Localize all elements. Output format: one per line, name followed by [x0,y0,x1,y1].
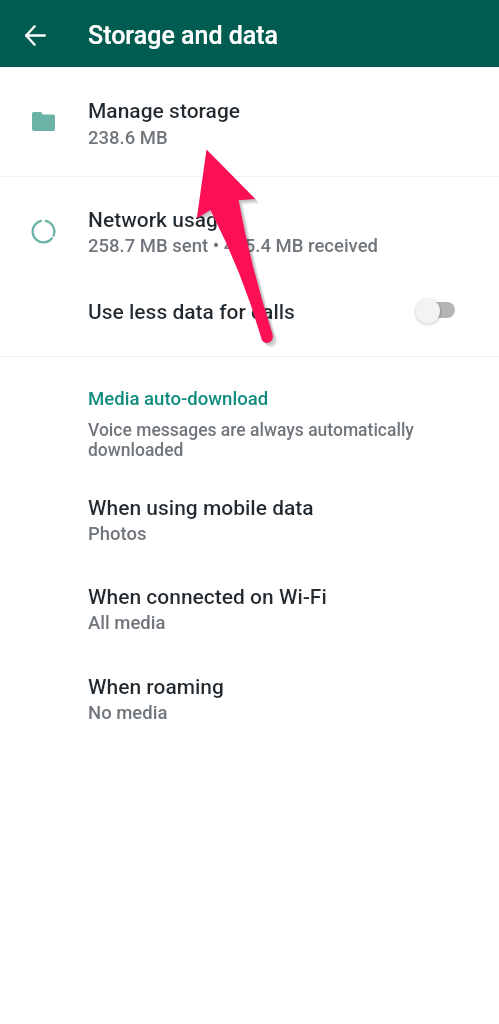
staticText: When roaming [88,675,224,700]
button[interactable]: Manage storage [0,68,499,176]
button[interactable]: When connected on Wi-Fi [0,566,499,650]
button[interactable]: Back [15,15,55,55]
staticText: Voice messages are always automatically … [88,420,420,460]
staticText: 238.6 MB [88,127,168,149]
button[interactable]: Network usage [0,177,499,266]
staticText: When using mobile data [88,496,314,521]
staticText: Use less data for calls [88,300,295,325]
button[interactable]: Use less data for calls [0,266,499,356]
staticText: All media [88,612,166,634]
staticText: Media auto-download [88,388,269,410]
button[interactable]: When roaming [0,656,499,740]
button[interactable]: When using mobile data [0,477,499,561]
staticText: Network usage [88,208,230,233]
staticText: Storage and data [88,21,279,50]
staticText: Manage storage [88,99,241,124]
staticText: Photos [88,523,147,545]
staticText: 258.7 MB sent • 465.4 MB received [88,235,379,257]
staticText: No media [88,702,168,724]
staticText: When connected on Wi-Fi [88,585,327,610]
